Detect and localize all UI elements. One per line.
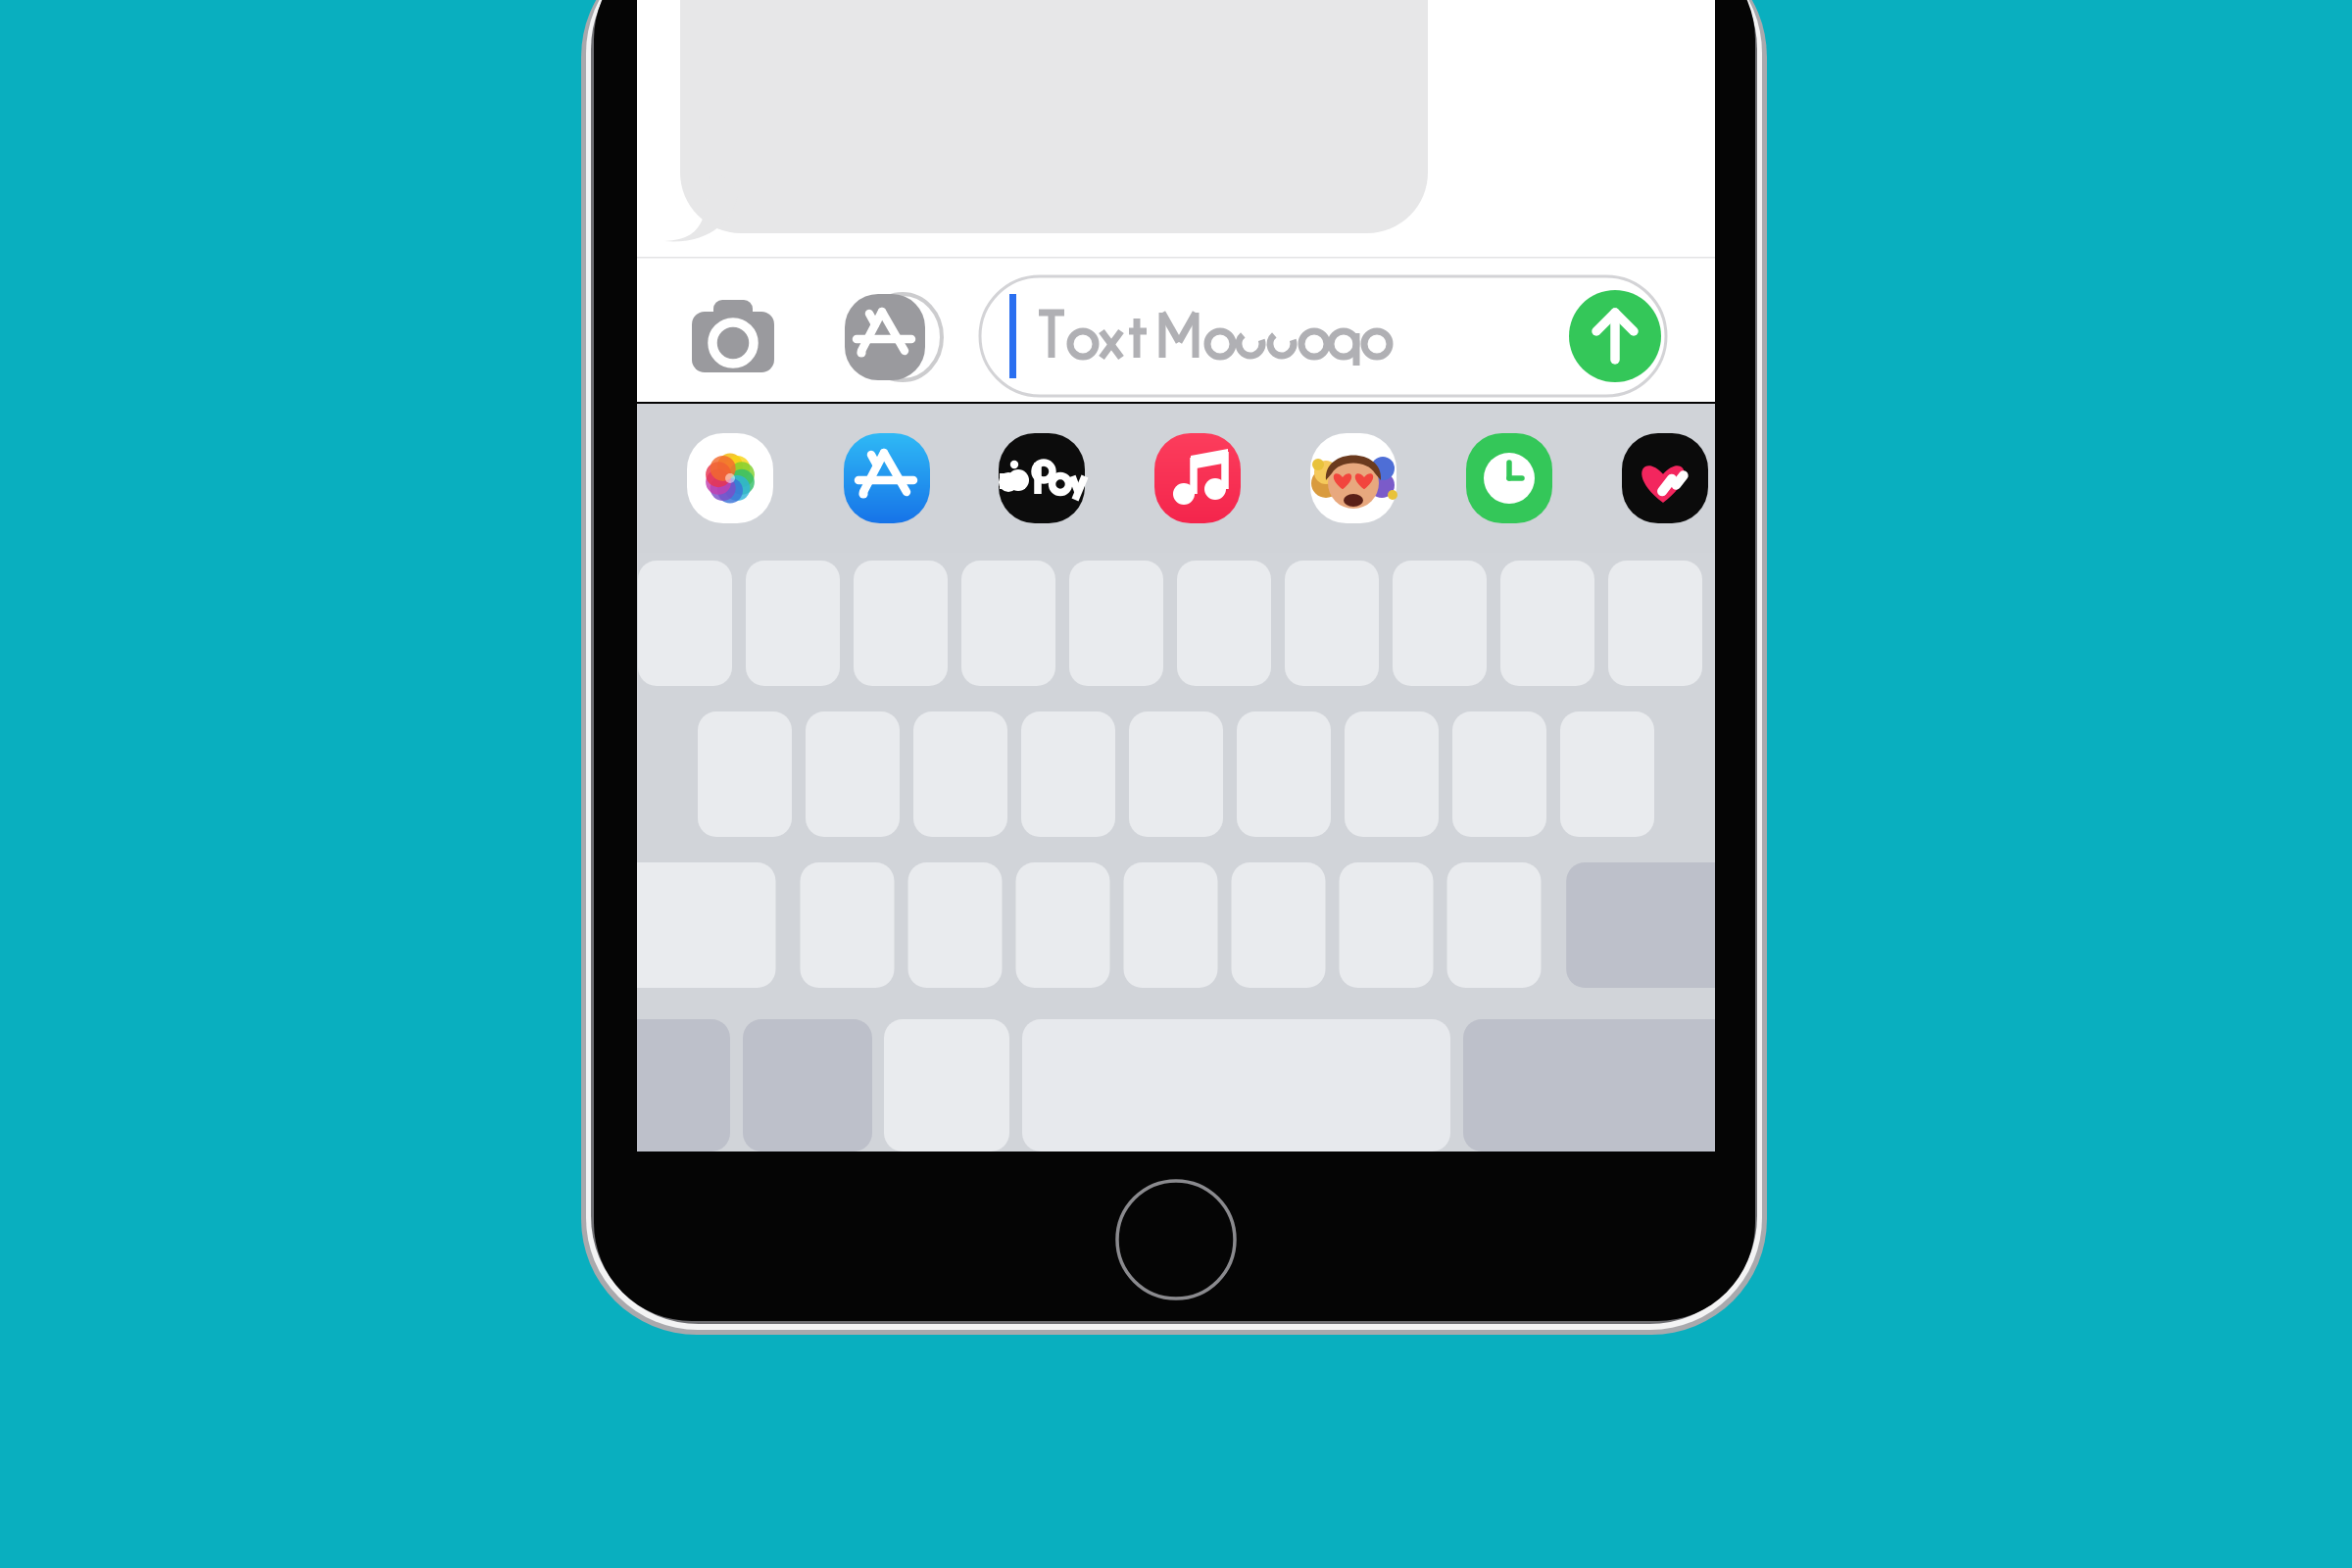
button[interactable]: App Store — [844, 433, 930, 523]
button[interactable]: Fitness — [1622, 433, 1708, 523]
button[interactable]: Home — [1117, 1181, 1235, 1298]
button[interactable]: App Store — [826, 282, 946, 392]
button[interactable]: Photos — [687, 433, 773, 523]
button[interactable]: Music — [1154, 433, 1241, 523]
button[interactable]: Text Message field — [980, 276, 1568, 396]
button[interactable]: Recents — [1466, 433, 1552, 523]
button[interactable]: Send — [1569, 290, 1661, 382]
button[interactable]: Camera — [676, 282, 794, 392]
button[interactable]: Apple Pay — [999, 433, 1085, 523]
button[interactable]: Memoji — [1310, 433, 1396, 523]
